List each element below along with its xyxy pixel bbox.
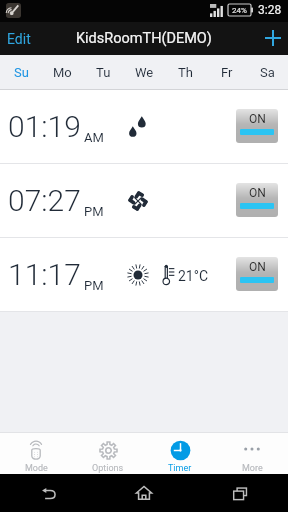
staticText: 11:17	[8, 257, 81, 292]
button[interactable]: ON	[236, 109, 278, 143]
staticText: Edit	[7, 31, 31, 47]
staticText: ON	[249, 112, 266, 126]
staticText: We	[135, 65, 154, 80]
button[interactable]: Timer	[144, 433, 216, 474]
staticText: AM	[84, 130, 104, 145]
staticText: PM	[84, 204, 104, 219]
button[interactable]: Th	[165, 55, 206, 89]
staticText: Th	[178, 65, 193, 80]
staticText: Fr	[221, 65, 233, 80]
staticText: Tu	[96, 65, 111, 80]
staticText: Mo	[53, 65, 72, 80]
staticText: KidsRoomTH(DEMO)	[76, 30, 212, 47]
button[interactable]: Recents	[192, 474, 288, 512]
button[interactable]: Back	[0, 474, 96, 512]
button[interactable]: 01:19	[0, 90, 288, 163]
button[interactable]: 07:27	[0, 164, 288, 237]
staticText: 21°C	[178, 268, 209, 284]
staticText: Mode	[25, 463, 48, 474]
button[interactable]: ON	[236, 257, 278, 291]
button[interactable]: Edit	[0, 22, 288, 55]
button[interactable]: Mode	[0, 433, 72, 474]
staticText: ON	[249, 260, 266, 274]
button[interactable]: More	[216, 433, 288, 474]
staticText: Options	[92, 463, 124, 474]
staticText: ON	[249, 186, 266, 200]
staticText: Timer	[168, 463, 192, 474]
staticText: 01:19	[8, 109, 81, 144]
button[interactable]: ON	[236, 183, 278, 217]
button[interactable]: Tu	[83, 55, 124, 89]
staticText: Su	[14, 65, 29, 80]
button[interactable]: Su	[0, 55, 42, 89]
staticText: More	[242, 463, 263, 474]
button[interactable]: We	[124, 55, 165, 89]
staticText: Sa	[260, 65, 275, 80]
button[interactable]: Add alarm	[256, 22, 288, 55]
button[interactable]: Mo	[42, 55, 83, 89]
button[interactable]: Home	[96, 474, 192, 512]
button[interactable]: Sa	[247, 55, 288, 89]
button[interactable]: 11:17	[0, 238, 288, 311]
staticText: PM	[84, 278, 104, 293]
staticText: 24%	[232, 6, 247, 15]
staticText: 07:27	[8, 183, 81, 218]
staticText: 3:28	[258, 3, 282, 17]
button[interactable]: Options	[72, 433, 144, 474]
button[interactable]: Fr	[206, 55, 247, 89]
